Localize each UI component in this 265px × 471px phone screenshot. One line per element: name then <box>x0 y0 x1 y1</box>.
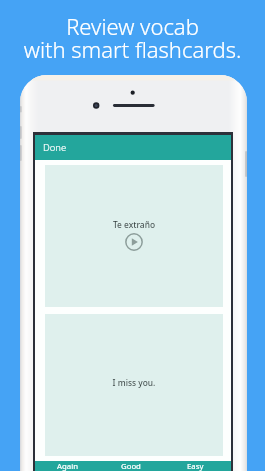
staticText: I miss you. <box>45 377 223 388</box>
button[interactable]: Again <box>36 461 99 471</box>
staticText: Done <box>43 141 67 154</box>
staticText: Good <box>121 461 141 471</box>
staticText: Again <box>57 461 78 471</box>
button[interactable]: I miss you. <box>45 314 223 456</box>
button[interactable]: Easy <box>163 461 227 471</box>
button[interactable]: Done <box>35 135 231 160</box>
staticText: Easy <box>187 461 204 471</box>
button[interactable]: Te extraño <box>45 165 223 307</box>
button[interactable]: Good <box>99 461 163 471</box>
button[interactable]: Play audio <box>125 233 143 251</box>
staticText: Review vocab with smart flashcards. <box>0 11 265 65</box>
staticText: Te extraño <box>45 219 223 230</box>
